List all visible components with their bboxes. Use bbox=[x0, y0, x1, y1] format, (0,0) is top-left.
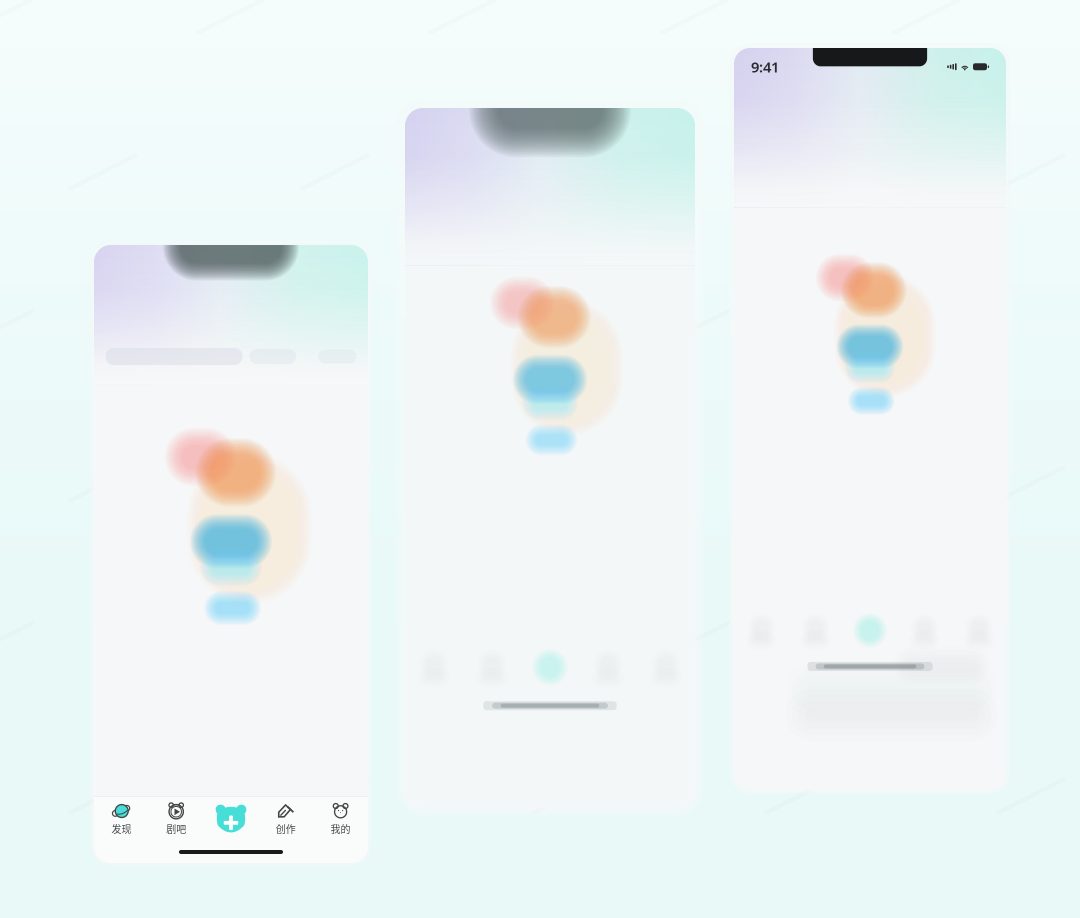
staticText: 9:41 bbox=[751, 57, 779, 76]
button[interactable]: 创建 bbox=[204, 801, 258, 836]
button[interactable]: 剧吧 bbox=[149, 797, 204, 841]
staticText: 创作 bbox=[276, 821, 296, 836]
staticText: 我的 bbox=[331, 821, 351, 836]
button[interactable]: 我的 bbox=[313, 797, 368, 841]
button[interactable]: 创作 bbox=[258, 797, 313, 841]
staticText: 剧吧 bbox=[166, 821, 186, 836]
button[interactable]: 发现 bbox=[94, 797, 149, 841]
staticText: 发现 bbox=[111, 821, 131, 836]
